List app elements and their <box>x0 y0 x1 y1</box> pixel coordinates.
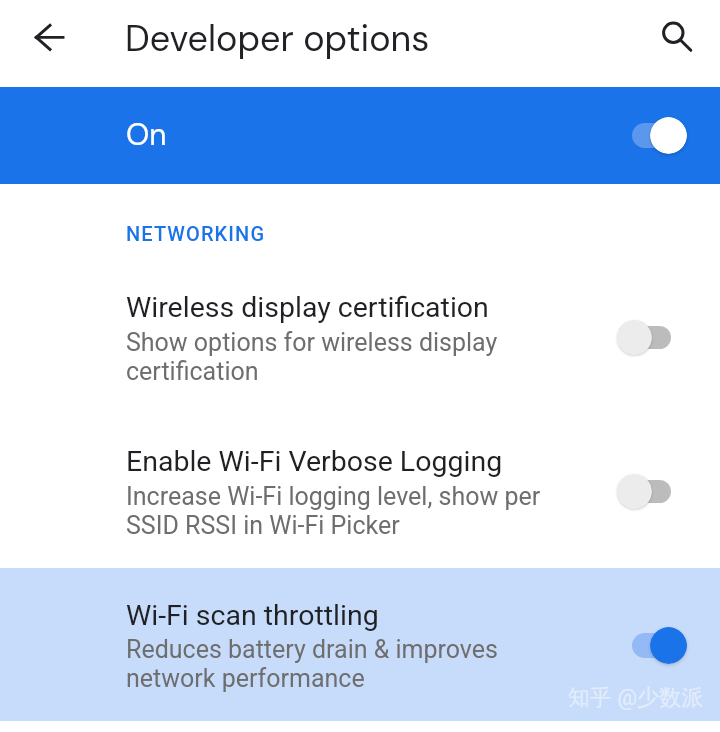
button[interactable]: Wi-Fi scan throttling <box>0 568 720 721</box>
button[interactable]: Off, toggle on <box>605 316 685 364</box>
staticText: Developer options <box>125 17 430 61</box>
button[interactable]: Wireless display certification <box>0 262 720 394</box>
button[interactable]: Off, toggle on <box>605 470 685 518</box>
button[interactable]: Search settings <box>645 4 703 62</box>
staticText: Reduces battery drain & improves network… <box>126 635 498 693</box>
staticText: Wireless display certification <box>126 290 489 324</box>
button[interactable]: Enable Wi-Fi Verbose Logging <box>0 416 720 548</box>
button[interactable]: On, toggle off <box>620 112 700 160</box>
staticText: Show options for wireless display certif… <box>126 328 498 386</box>
staticText: NETWORKING <box>126 222 266 246</box>
staticText: 知乎 @少数派 <box>568 684 704 711</box>
button[interactable]: On <box>0 87 720 184</box>
staticText: Enable Wi-Fi Verbose Logging <box>126 444 503 478</box>
button[interactable]: On, toggle off <box>620 622 700 670</box>
staticText: Wi-Fi scan throttling <box>126 598 379 632</box>
staticText: On <box>126 118 167 154</box>
staticText: Increase Wi-Fi logging level, show per S… <box>126 482 541 540</box>
button[interactable]: Navigate back <box>9 9 67 67</box>
